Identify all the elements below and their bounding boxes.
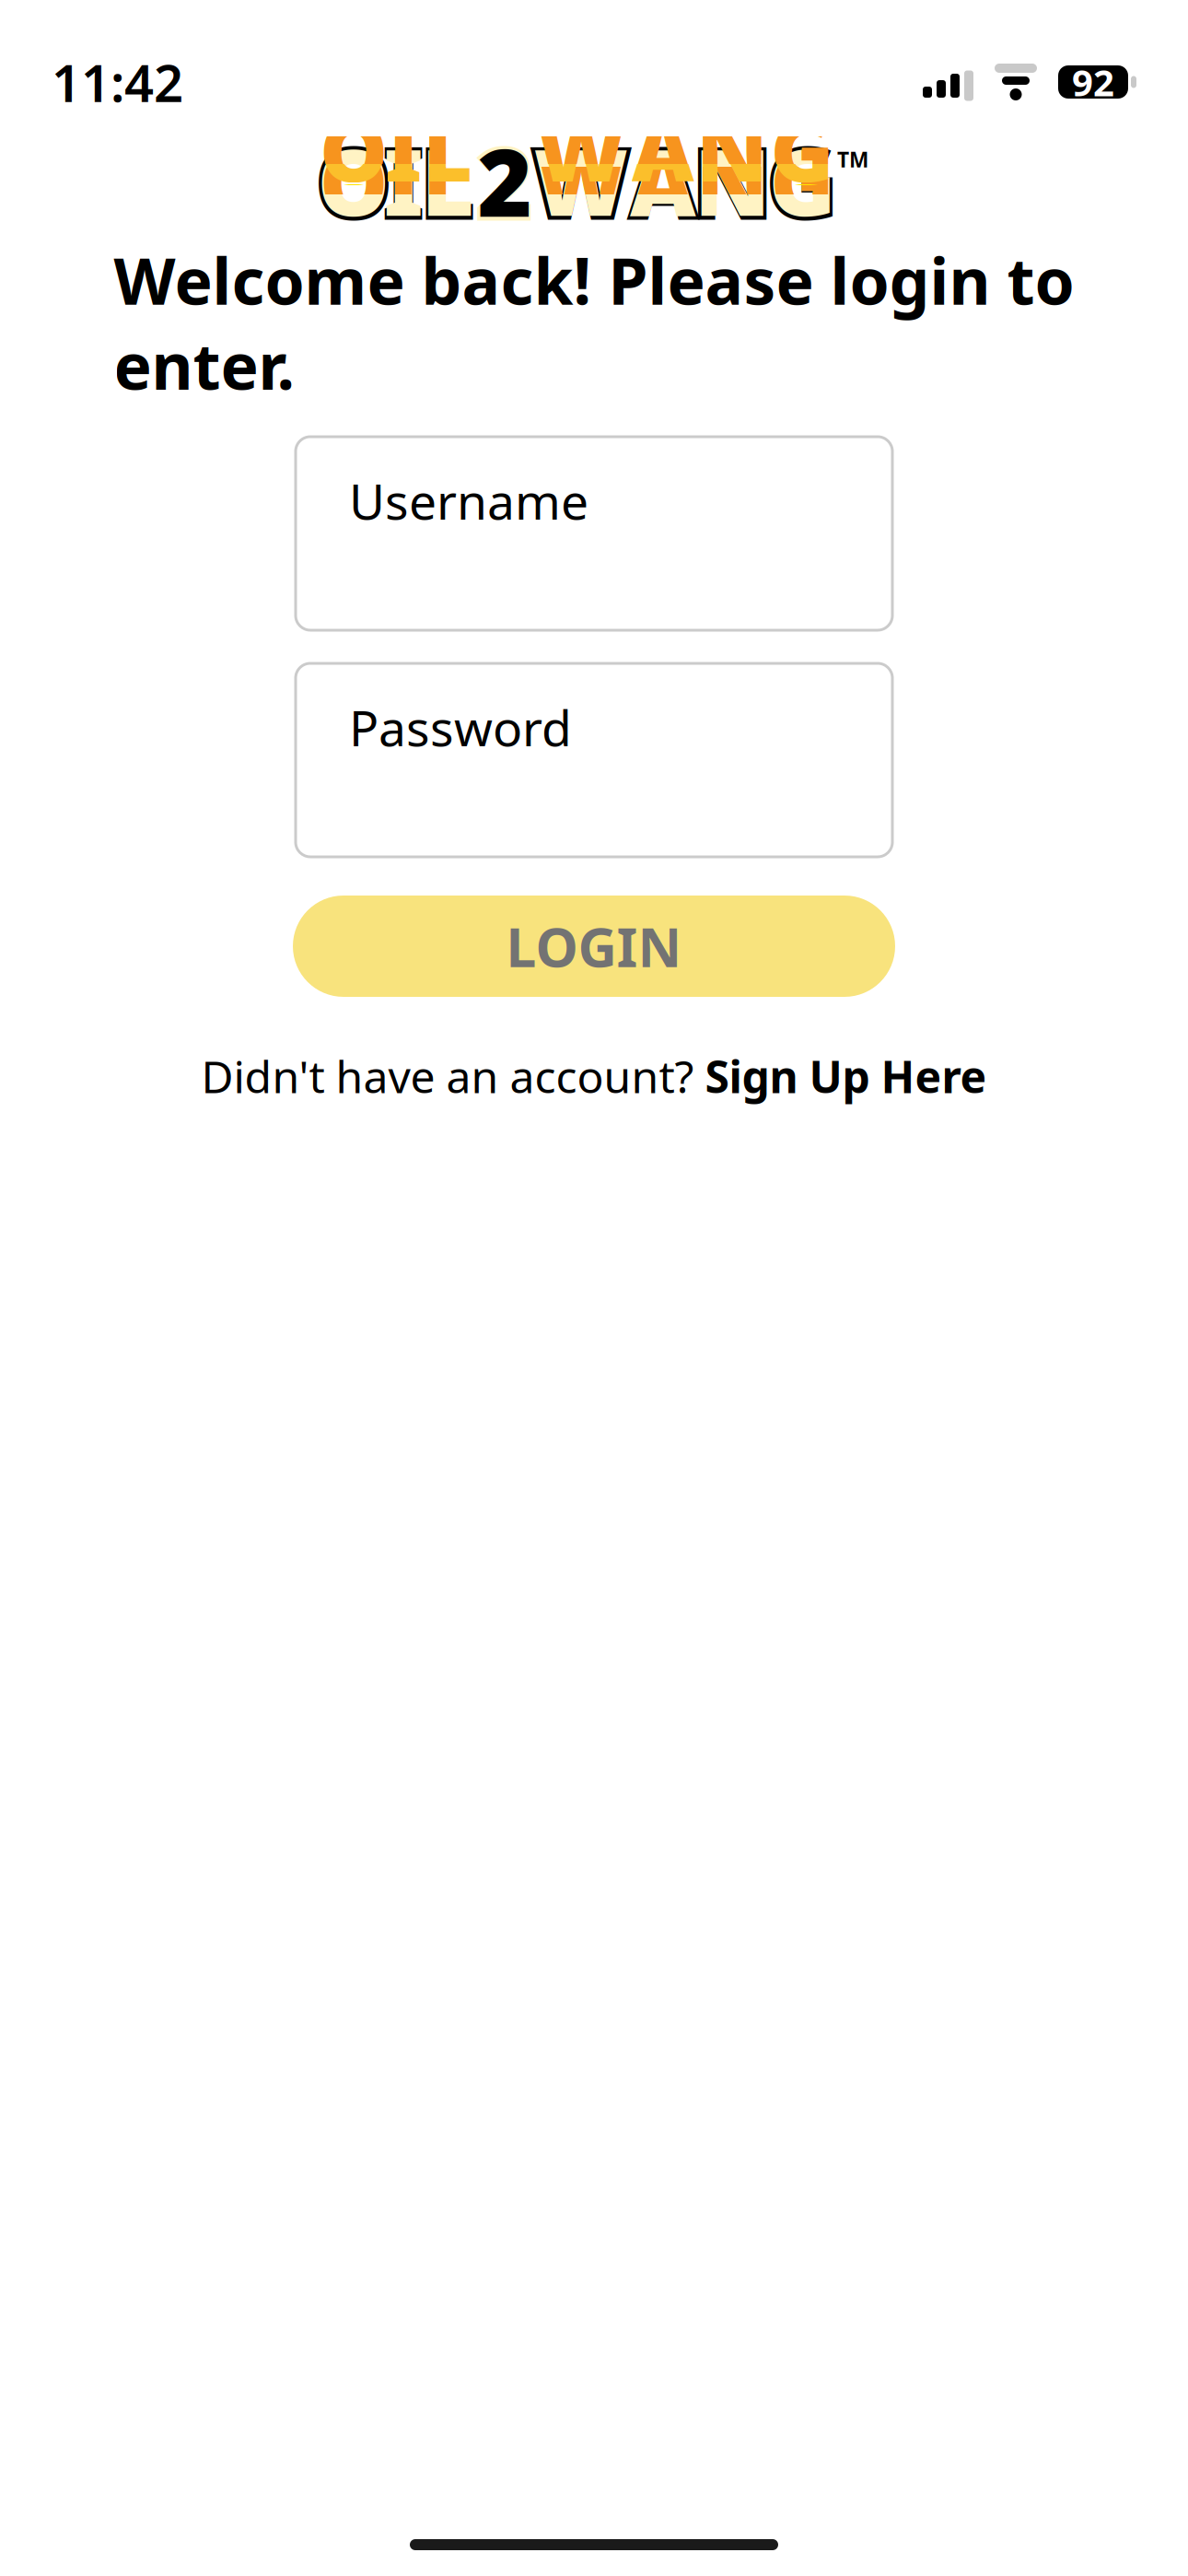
button[interactable]: LOGIN bbox=[293, 896, 895, 997]
staticText: Didn't have an account? bbox=[201, 1047, 705, 1105]
staticText: W bbox=[529, 114, 634, 247]
staticText: W bbox=[536, 91, 626, 205]
staticText: N bbox=[696, 123, 768, 238]
staticText: W bbox=[536, 94, 626, 208]
staticText: W bbox=[536, 93, 626, 207]
staticText: 2 bbox=[478, 119, 532, 243]
button[interactable]: Didn't have an account? bbox=[201, 1054, 987, 1098]
staticText: G bbox=[770, 93, 834, 207]
staticText: L bbox=[423, 123, 472, 238]
staticText: G bbox=[765, 114, 839, 247]
staticText: TM bbox=[837, 145, 868, 173]
staticText: N bbox=[696, 93, 768, 207]
staticText: N bbox=[696, 94, 768, 208]
button[interactable]: Password bbox=[296, 663, 892, 857]
staticText: I bbox=[384, 91, 422, 205]
staticText: L bbox=[423, 93, 472, 207]
staticText: O bbox=[320, 91, 388, 205]
staticText: W bbox=[536, 123, 626, 238]
staticText: Sign Up Here bbox=[705, 1047, 987, 1105]
staticText: L bbox=[423, 94, 472, 208]
staticText: G bbox=[769, 120, 836, 241]
staticText: O bbox=[317, 120, 390, 241]
staticText: A bbox=[632, 93, 694, 207]
staticText: O bbox=[314, 114, 394, 247]
staticText: 11:42 bbox=[52, 48, 183, 116]
staticText: A bbox=[630, 120, 696, 241]
staticText: I bbox=[384, 123, 422, 238]
button[interactable]: Username bbox=[296, 437, 892, 630]
staticText: G bbox=[770, 94, 834, 208]
staticText: G bbox=[770, 123, 834, 238]
staticText: Welcome back! Please login to enter. bbox=[114, 238, 1074, 407]
staticText: O bbox=[320, 93, 388, 207]
staticText: A bbox=[632, 94, 694, 208]
staticText: G bbox=[770, 91, 834, 205]
staticText: I bbox=[384, 120, 423, 241]
staticText: I bbox=[384, 94, 422, 208]
staticText: Username bbox=[349, 468, 588, 533]
staticText: O bbox=[320, 94, 388, 208]
staticText: N bbox=[694, 120, 770, 241]
staticText: LOGIN bbox=[506, 910, 682, 982]
staticText: L bbox=[418, 114, 477, 247]
staticText: A bbox=[632, 91, 694, 205]
staticText: Password bbox=[349, 695, 572, 760]
staticText: N bbox=[690, 114, 774, 247]
staticText: O bbox=[320, 123, 388, 238]
staticText: I bbox=[384, 93, 422, 207]
staticText: A bbox=[632, 123, 694, 238]
staticText: 2 bbox=[474, 112, 535, 249]
staticText: A bbox=[627, 114, 699, 247]
staticText: L bbox=[421, 120, 474, 241]
staticText: N bbox=[696, 91, 768, 205]
staticText: 92 bbox=[1072, 57, 1114, 106]
staticText: L bbox=[423, 91, 472, 205]
staticText: I bbox=[381, 114, 425, 247]
staticText: W bbox=[534, 120, 629, 241]
